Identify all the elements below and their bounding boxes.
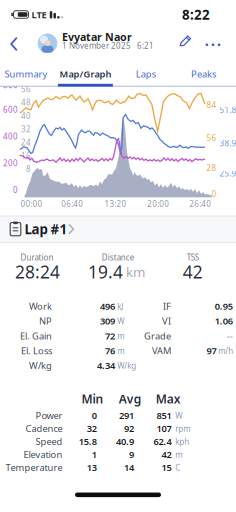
staticText: 0 bbox=[13, 185, 18, 195]
staticText: 28:24 bbox=[15, 260, 60, 283]
button[interactable]: Peaks bbox=[179, 63, 229, 85]
staticText: 25.9 bbox=[219, 168, 236, 179]
staticText: Temperature bbox=[5, 461, 62, 474]
staticText: m bbox=[175, 449, 182, 460]
button[interactable]: Back bbox=[5, 33, 23, 55]
staticText: 32 bbox=[87, 422, 97, 435]
staticText: 14 bbox=[124, 461, 134, 474]
staticText: 56 bbox=[21, 84, 31, 94]
staticText: 0.95 bbox=[215, 300, 233, 312]
staticText: El. Loss bbox=[21, 344, 52, 357]
staticText: W bbox=[175, 410, 182, 421]
staticText: Peaks bbox=[191, 68, 216, 80]
staticText: 76 bbox=[105, 344, 115, 357]
staticText: 56 bbox=[206, 133, 216, 143]
staticText: 26:40 bbox=[189, 199, 211, 209]
staticText: 62.4 bbox=[153, 435, 171, 448]
staticText: Power bbox=[35, 409, 62, 422]
staticText: 40.9 bbox=[116, 435, 134, 448]
button[interactable]: Laps bbox=[121, 63, 171, 85]
staticText: 291 bbox=[119, 409, 134, 422]
staticText: TSS bbox=[187, 252, 199, 263]
staticText: 13:20 bbox=[104, 199, 126, 209]
staticText: VAM bbox=[152, 344, 171, 357]
staticText: 19.4 bbox=[88, 260, 123, 283]
staticText: 48 bbox=[21, 97, 31, 108]
staticText: 38.9 bbox=[219, 138, 236, 148]
staticText: 1.06 bbox=[215, 315, 233, 327]
staticText: 4.34 bbox=[97, 359, 115, 372]
staticText: W/kg bbox=[117, 360, 136, 371]
staticText: Duration bbox=[20, 252, 53, 263]
staticText: Distance bbox=[102, 252, 135, 263]
staticText: VI bbox=[162, 315, 171, 327]
staticText: Max bbox=[156, 391, 181, 407]
staticText: W bbox=[117, 316, 124, 326]
staticText: 24 bbox=[21, 137, 31, 148]
staticText: 0 bbox=[211, 188, 216, 199]
staticText: IF bbox=[163, 300, 171, 312]
staticText: 1 bbox=[92, 448, 97, 461]
staticText: 200 bbox=[3, 158, 18, 168]
staticText: rpm bbox=[175, 423, 190, 434]
staticText: Laps bbox=[136, 68, 156, 80]
staticText: 51.8 bbox=[219, 105, 236, 115]
staticText: Min bbox=[82, 391, 104, 407]
staticText: Lap #1 bbox=[24, 220, 67, 238]
button[interactable]: Summary bbox=[0, 63, 54, 85]
staticText: -- bbox=[227, 330, 233, 342]
staticText: 15.8 bbox=[79, 435, 97, 448]
staticText: 06:40 bbox=[61, 199, 83, 209]
staticText: 496 bbox=[100, 300, 115, 312]
staticText: 28 bbox=[206, 162, 216, 173]
staticText: LTE bbox=[31, 8, 46, 21]
staticText: Speed bbox=[35, 435, 62, 448]
staticText: 84 bbox=[206, 100, 216, 110]
staticText: C bbox=[175, 462, 180, 473]
button[interactable]: Map/Graph bbox=[56, 63, 114, 85]
staticText: 107 bbox=[156, 422, 171, 435]
staticText: 40 bbox=[21, 110, 31, 121]
staticText: Grade bbox=[144, 330, 171, 342]
staticText: El. Gain bbox=[20, 330, 52, 342]
staticText: Work bbox=[29, 300, 52, 312]
staticText: Avg bbox=[119, 391, 142, 407]
staticText: 8:22 bbox=[182, 6, 210, 23]
staticText: m/h bbox=[218, 345, 233, 356]
staticText: 00:00 bbox=[20, 199, 42, 209]
button[interactable]: More bbox=[202, 37, 224, 53]
staticText: 309 bbox=[100, 315, 115, 327]
staticText: 20:00 bbox=[147, 199, 169, 209]
staticText: 42 bbox=[161, 448, 171, 461]
staticText: m bbox=[117, 345, 124, 356]
staticText: m bbox=[117, 331, 124, 341]
staticText: 800 bbox=[3, 80, 18, 90]
staticText: 92 bbox=[124, 422, 134, 435]
staticText: 600 bbox=[3, 104, 18, 115]
staticText: 8 bbox=[26, 164, 31, 174]
staticText: 9 bbox=[129, 448, 134, 461]
staticText: 32 bbox=[21, 124, 31, 134]
button[interactable]: Lap #1 bbox=[0, 216, 236, 243]
button[interactable]: Edit bbox=[176, 34, 194, 52]
staticText: NP bbox=[39, 315, 52, 327]
staticText: 16 bbox=[21, 150, 31, 161]
staticText: 400 bbox=[3, 131, 18, 142]
staticText: kph bbox=[175, 436, 189, 447]
staticText: 13 bbox=[87, 461, 97, 474]
staticText: W/kg bbox=[29, 359, 52, 372]
staticText: 0 bbox=[92, 409, 97, 422]
staticText: Evyatar Naor bbox=[62, 30, 132, 44]
staticText: km bbox=[126, 263, 145, 281]
staticText: kJ bbox=[117, 301, 123, 312]
staticText: 1 November 2025 6:21 bbox=[62, 40, 154, 51]
staticText: Map/Graph bbox=[59, 68, 111, 80]
staticText: Cadence bbox=[25, 422, 62, 435]
staticText: 97 bbox=[206, 344, 216, 357]
staticText: 42 bbox=[183, 260, 203, 283]
staticText: 851 bbox=[156, 409, 171, 422]
staticText: 15 bbox=[161, 461, 171, 474]
staticText: Elevation bbox=[23, 448, 62, 461]
staticText: 72 bbox=[105, 330, 115, 342]
staticText: Summary bbox=[4, 68, 47, 80]
